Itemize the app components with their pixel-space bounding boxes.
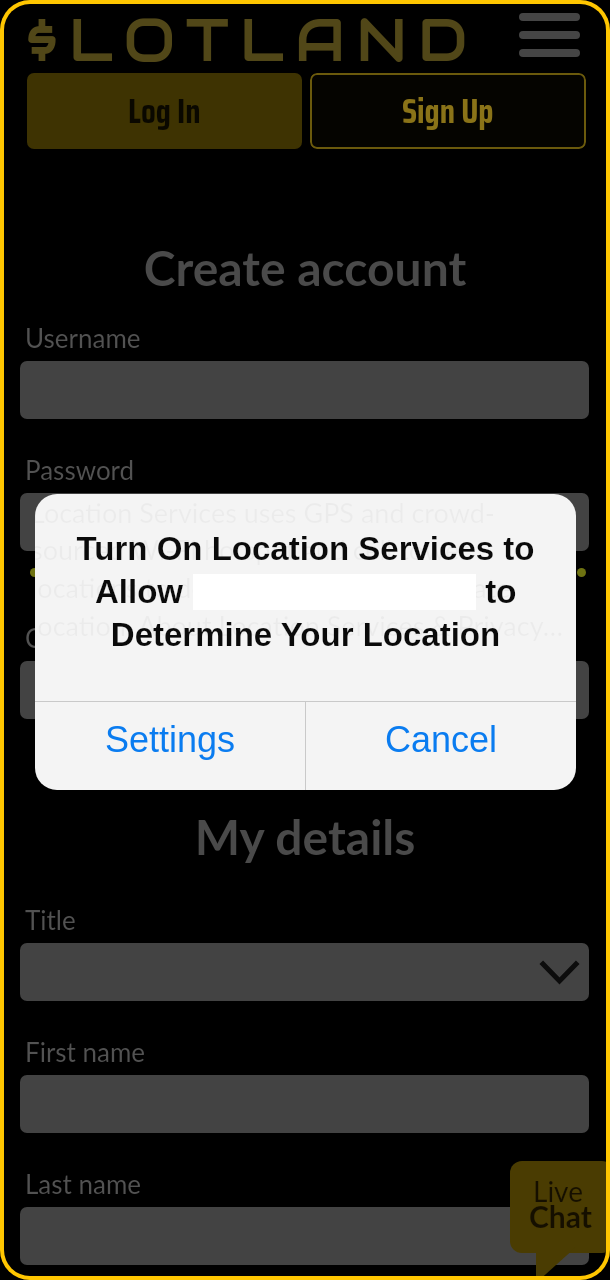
staticText: Chat	[529, 1198, 592, 1234]
button[interactable]: Live Chat	[510, 1161, 606, 1276]
staticText: First name	[25, 1036, 146, 1067]
staticText: Confirm password	[25, 622, 233, 653]
staticText: Username	[25, 322, 141, 353]
staticText: $LOTLAND	[26, 4, 479, 78]
button[interactable]	[20, 661, 589, 719]
staticText: Allow	[95, 573, 193, 610]
button[interactable]: Cancel	[306, 702, 576, 790]
staticText: Determine Your Location	[35, 616, 576, 653]
staticText: Settings	[105, 719, 236, 759]
staticText: Location Services uses GPS and crowd-sou…	[35, 496, 572, 642]
staticText: Last name	[25, 1168, 142, 1199]
button[interactable]	[20, 943, 589, 1001]
staticText: Create account	[4, 239, 606, 297]
staticText: Title	[25, 904, 76, 935]
button[interactable]: Sign Up	[310, 73, 586, 149]
button[interactable]	[20, 493, 589, 551]
button[interactable]: Menu	[509, 4, 589, 66]
staticText: My details	[4, 808, 606, 866]
button[interactable]: Log In	[27, 73, 302, 149]
staticText: Sign Up	[402, 84, 494, 138]
button[interactable]	[20, 1207, 589, 1265]
staticText: Turn On Location Services to	[35, 530, 576, 567]
button[interactable]: Settings	[35, 702, 305, 790]
staticText: Log In	[128, 84, 201, 138]
staticText: Cancel	[385, 719, 498, 759]
staticText: Password	[25, 454, 135, 485]
staticText: to	[476, 573, 517, 610]
staticText: Live	[533, 1174, 583, 1208]
